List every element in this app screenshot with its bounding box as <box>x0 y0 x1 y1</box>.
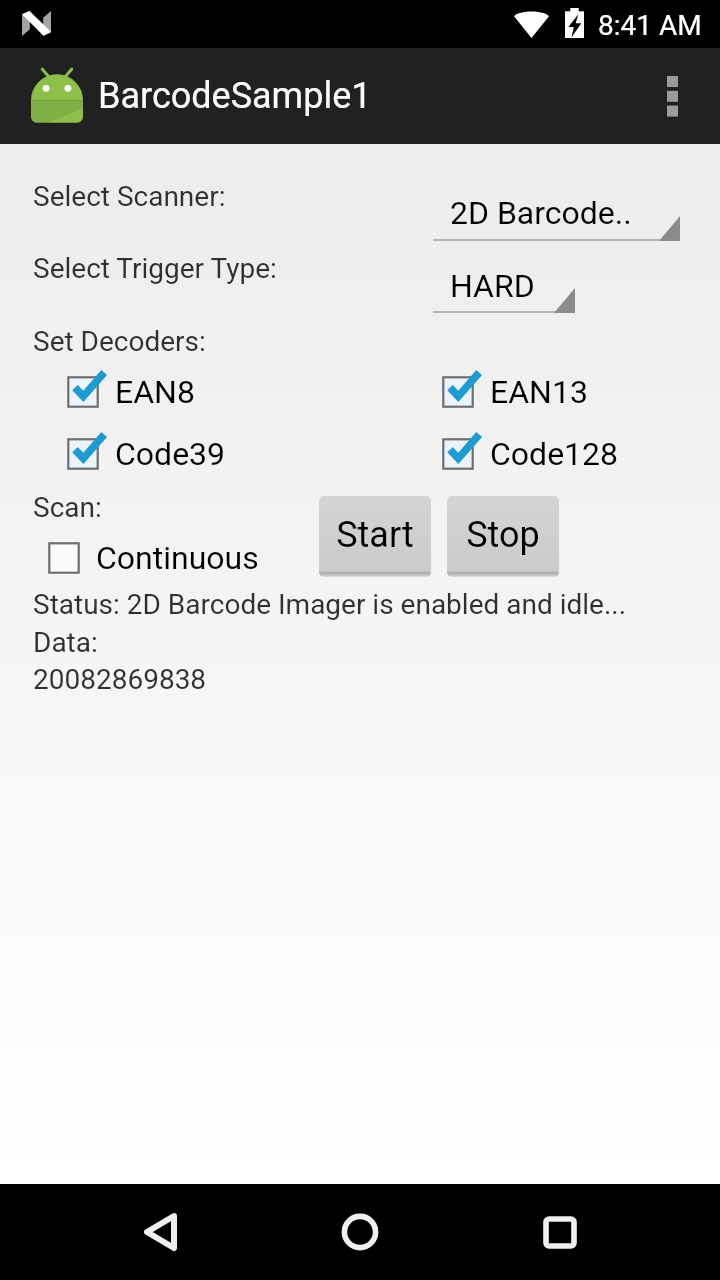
staticText: Continuous <box>96 539 259 577</box>
staticText: Set Decoders: <box>33 325 206 358</box>
staticText: EAN13 <box>490 373 588 411</box>
staticText: Status: 2D Barcode Imager is enabled and… <box>33 588 627 621</box>
staticText: 8:41 AM <box>598 9 702 42</box>
staticText: EAN8 <box>115 373 195 411</box>
button[interactable]: Stop <box>447 496 559 577</box>
button[interactable]: Start <box>319 496 431 577</box>
staticText: Code39 <box>115 435 226 473</box>
staticText: 20082869838 <box>33 663 207 696</box>
staticText: Select Trigger Type: <box>33 252 277 285</box>
button[interactable]: 2D Barcode.. <box>433 182 680 244</box>
button[interactable]: EAN8 <box>59 368 196 416</box>
button[interactable]: Recent apps <box>512 1184 608 1280</box>
staticText: Scan: <box>33 491 102 524</box>
button[interactable]: More options <box>624 48 720 144</box>
staticText: Data: <box>33 626 98 659</box>
button[interactable]: Home <box>312 1184 408 1280</box>
button[interactable]: Code39 <box>59 430 226 478</box>
button[interactable]: HARD <box>433 255 575 316</box>
staticText: HARD <box>450 267 535 305</box>
button[interactable]: Back <box>112 1184 208 1280</box>
staticText: BarcodeSample1 <box>98 75 372 117</box>
staticText: Select Scanner: <box>33 180 226 213</box>
staticText: 2D Barcode.. <box>450 194 632 232</box>
button[interactable]: EAN13 <box>434 368 589 416</box>
staticText: Start <box>336 514 414 556</box>
staticText: Code128 <box>490 435 619 473</box>
button[interactable]: Continuous <box>40 534 260 582</box>
button[interactable]: Code128 <box>434 430 619 478</box>
staticText: Stop <box>466 514 540 556</box>
